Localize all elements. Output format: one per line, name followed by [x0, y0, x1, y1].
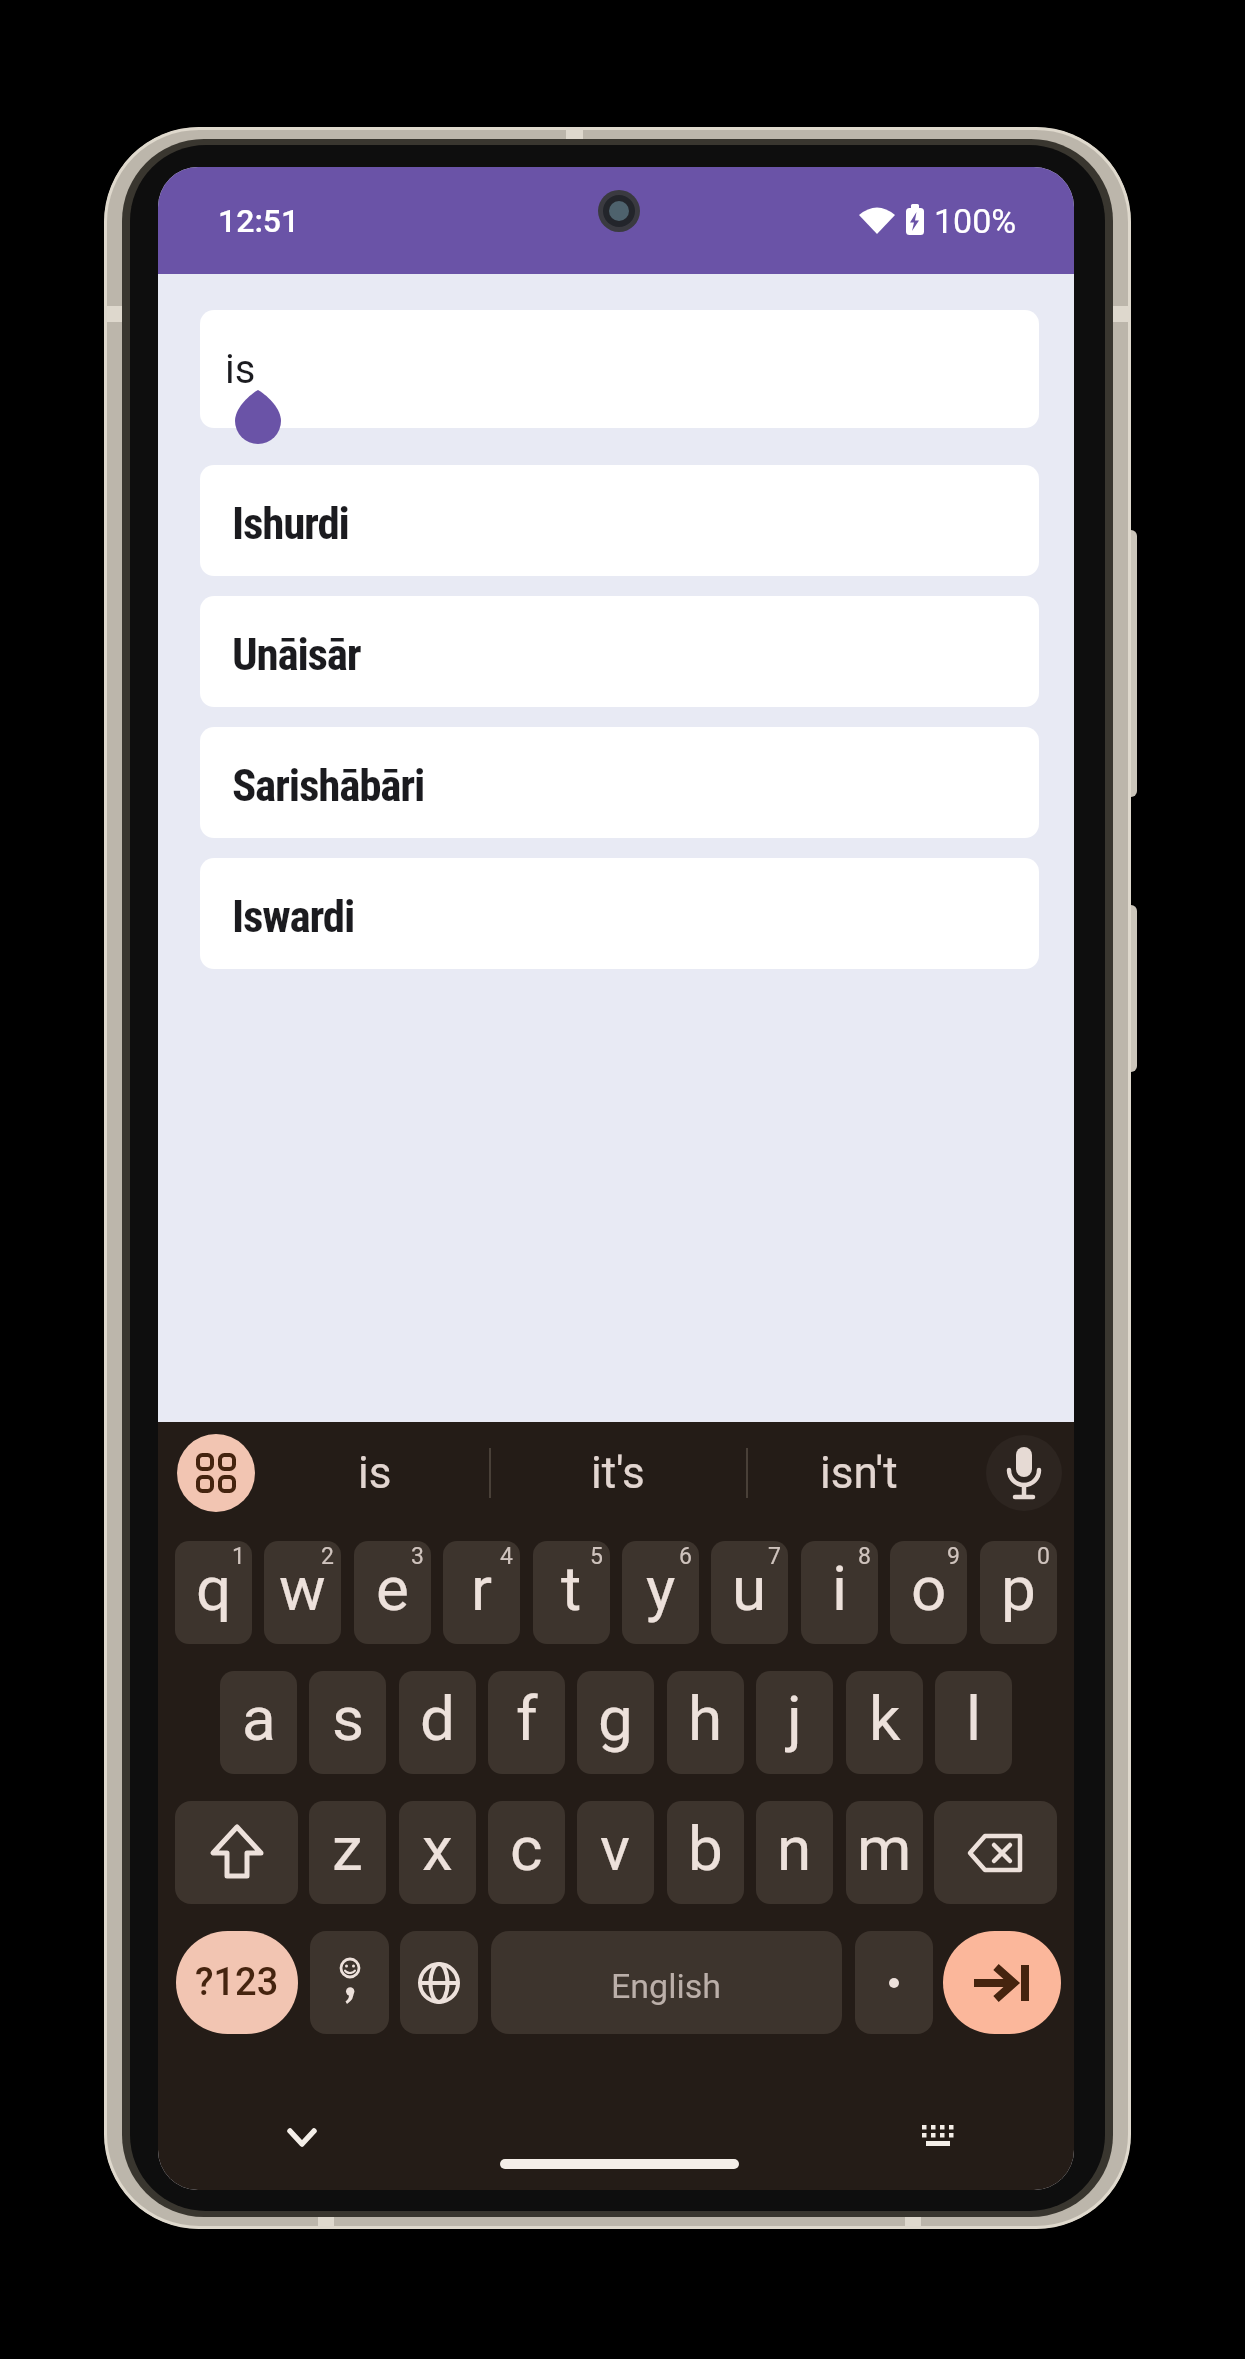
- button[interactable]: it's: [558, 1434, 678, 1512]
- button[interactable]: h: [667, 1671, 744, 1774]
- button[interactable]: m: [846, 1801, 923, 1904]
- button[interactable]: n: [756, 1801, 833, 1904]
- button[interactable]: e: [354, 1541, 431, 1644]
- staticText: b: [688, 1812, 723, 1885]
- button[interactable]: x: [399, 1801, 476, 1904]
- button[interactable]: is: [200, 310, 1039, 428]
- button[interactable]: c: [488, 1801, 565, 1904]
- staticText: is: [225, 346, 256, 393]
- button[interactable]: p: [980, 1541, 1057, 1644]
- staticText: i: [832, 1552, 848, 1625]
- button[interactable]: q: [175, 1541, 252, 1644]
- button[interactable]: y: [622, 1541, 699, 1644]
- button[interactable]: [310, 1931, 389, 2034]
- button[interactable]: s: [309, 1671, 386, 1774]
- staticText: k: [869, 1682, 901, 1755]
- button[interactable]: t: [533, 1541, 610, 1644]
- staticText: j: [787, 1682, 802, 1755]
- staticText: 7: [768, 1543, 781, 1570]
- staticText: 100%: [934, 201, 1017, 241]
- button[interactable]: a: [220, 1671, 297, 1774]
- button[interactable]: w: [264, 1541, 341, 1644]
- button[interactable]: r: [443, 1541, 520, 1644]
- staticText: t: [561, 1552, 582, 1625]
- staticText: p: [1001, 1552, 1036, 1625]
- staticText: n: [777, 1812, 812, 1885]
- staticText: English: [611, 1966, 722, 2006]
- button[interactable]: ?123: [176, 1931, 298, 2034]
- staticText: v: [600, 1812, 631, 1885]
- staticText: u: [732, 1552, 767, 1625]
- button[interactable]: b: [667, 1801, 744, 1904]
- staticText: ?123: [195, 1960, 279, 2005]
- button[interactable]: English: [491, 1931, 842, 2034]
- staticText: 12:51: [218, 202, 300, 240]
- staticText: Iswardi: [232, 890, 355, 943]
- staticText: 5: [590, 1543, 603, 1570]
- staticText: is: [358, 1447, 392, 1499]
- button[interactable]: [855, 1931, 933, 2034]
- staticText: 2: [321, 1543, 334, 1570]
- button[interactable]: [500, 2153, 739, 2175]
- staticText: 9: [947, 1543, 960, 1570]
- button[interactable]: l: [935, 1671, 1012, 1774]
- button[interactable]: f: [488, 1671, 565, 1774]
- button[interactable]: z: [309, 1801, 386, 1904]
- staticText: r: [471, 1552, 493, 1625]
- button[interactable]: [986, 1435, 1062, 1511]
- staticText: c: [510, 1812, 543, 1885]
- staticText: 6: [679, 1543, 692, 1570]
- button[interactable]: g: [577, 1671, 654, 1774]
- button[interactable]: Sarishābāri: [200, 727, 1039, 838]
- staticText: x: [422, 1812, 453, 1885]
- staticText: 3: [411, 1543, 424, 1570]
- button[interactable]: i: [801, 1541, 878, 1644]
- staticText: e: [376, 1552, 409, 1625]
- staticText: 1: [232, 1543, 245, 1570]
- button[interactable]: [175, 1801, 298, 1904]
- staticText: 4: [500, 1543, 513, 1570]
- staticText: Ishurdi: [232, 497, 349, 550]
- button[interactable]: [177, 1434, 255, 1512]
- button[interactable]: is: [315, 1434, 435, 1512]
- staticText: Unāisār: [232, 628, 361, 681]
- button[interactable]: j: [756, 1671, 833, 1774]
- staticText: 0: [1037, 1543, 1050, 1570]
- staticText: h: [688, 1682, 723, 1755]
- staticText: Sarishābāri: [232, 759, 425, 812]
- button[interactable]: Iswardi: [200, 858, 1039, 969]
- staticText: y: [646, 1552, 676, 1625]
- button[interactable]: Ishurdi: [200, 465, 1039, 576]
- staticText: it's: [591, 1447, 645, 1499]
- staticText: isn't: [820, 1447, 898, 1499]
- staticText: g: [598, 1682, 633, 1755]
- button[interactable]: v: [577, 1801, 654, 1904]
- staticText: q: [196, 1552, 232, 1625]
- button[interactable]: [943, 1931, 1061, 2034]
- button[interactable]: isn't: [799, 1434, 919, 1512]
- staticText: o: [911, 1552, 947, 1625]
- staticText: z: [332, 1812, 363, 1885]
- staticText: f: [516, 1682, 538, 1755]
- button[interactable]: [274, 2113, 330, 2159]
- button[interactable]: Unāisār: [200, 596, 1039, 707]
- staticText: l: [966, 1682, 982, 1755]
- staticText: a: [242, 1682, 276, 1755]
- staticText: 8: [858, 1543, 871, 1570]
- staticText: s: [332, 1682, 364, 1755]
- button[interactable]: d: [399, 1671, 476, 1774]
- button[interactable]: k: [846, 1671, 923, 1774]
- button[interactable]: [400, 1931, 478, 2034]
- button[interactable]: [934, 1801, 1057, 1904]
- staticText: d: [420, 1682, 455, 1755]
- staticText: m: [857, 1812, 912, 1885]
- button[interactable]: o: [890, 1541, 967, 1644]
- button[interactable]: [910, 2110, 966, 2166]
- staticText: w: [279, 1552, 326, 1625]
- button[interactable]: u: [711, 1541, 788, 1644]
